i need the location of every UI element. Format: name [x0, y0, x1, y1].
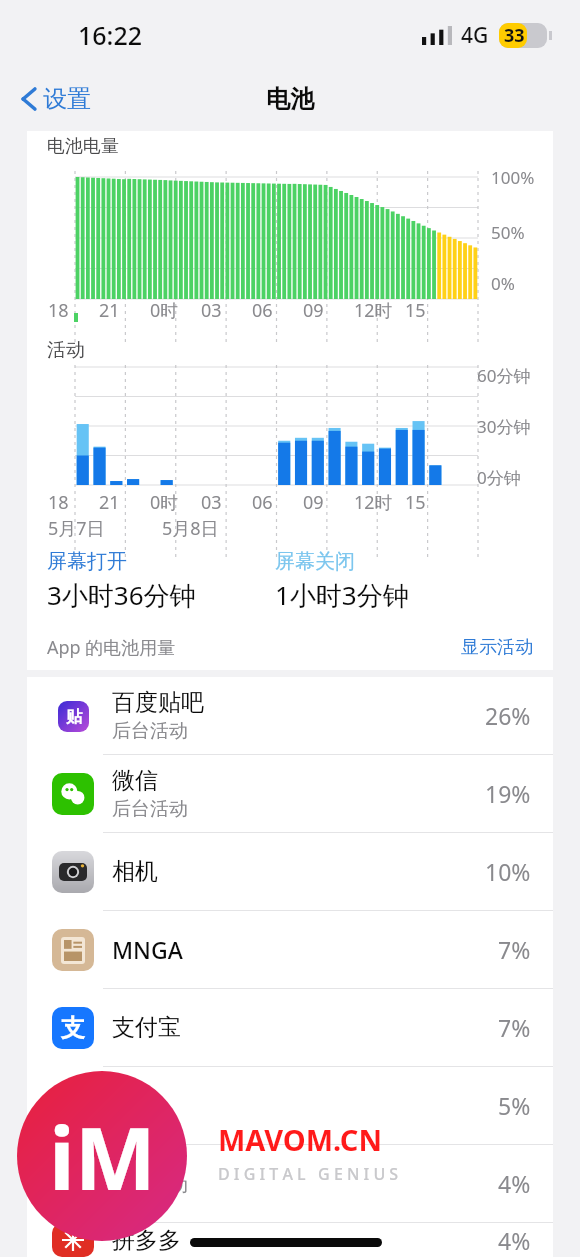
staticText: D I G I T A L G E N I U S	[218, 1163, 399, 1185]
staticText: 活动	[47, 338, 85, 362]
staticText: 0时	[150, 490, 179, 515]
staticText: 18	[48, 298, 69, 323]
staticText: 显示活动	[461, 636, 533, 659]
staticText: 26%	[485, 700, 531, 731]
staticText: 后台活动	[112, 719, 188, 743]
staticText: 设置	[43, 84, 91, 114]
staticText: 贴	[66, 707, 82, 727]
staticText: 7%	[498, 1012, 531, 1043]
staticText: 03	[201, 490, 222, 515]
staticText: 50%	[491, 221, 525, 244]
button[interactable]: MNGA	[27, 911, 553, 988]
staticText: 06	[252, 298, 273, 323]
staticText: 09	[303, 298, 324, 323]
staticText: 相机	[112, 857, 158, 886]
staticText: iM	[49, 1098, 156, 1215]
button[interactable]: 设置	[16, 78, 97, 120]
staticText: 15	[405, 298, 426, 323]
staticText: 7%	[498, 934, 531, 965]
staticText: 09	[303, 490, 324, 515]
staticText: 电池电量	[47, 135, 119, 158]
staticText: 0时	[150, 298, 179, 323]
staticText: 3小时36分钟	[47, 577, 196, 613]
staticText: 100%	[491, 166, 535, 189]
staticText: 30分钟	[477, 415, 531, 438]
staticText: 03	[201, 298, 222, 323]
staticText: 5月8日	[162, 516, 219, 541]
staticText: 06	[252, 490, 273, 515]
staticText: 15	[405, 490, 426, 515]
staticText: App 的电池用量	[47, 635, 176, 660]
staticText: 21	[99, 298, 120, 323]
button[interactable]: 相机	[27, 833, 553, 910]
button[interactable]: 后台活动	[27, 1145, 553, 1222]
staticText: 10%	[485, 856, 531, 887]
staticText: 19%	[485, 778, 531, 809]
staticText: 0分钟	[477, 466, 521, 489]
staticText: 5%	[498, 1090, 531, 1121]
staticText: 屏幕关闭	[275, 549, 355, 574]
staticText: 支付宝	[112, 1013, 181, 1042]
staticText: 后台活动	[112, 797, 188, 821]
button[interactable]: 显示活动	[461, 636, 533, 659]
staticText: 百度贴吧	[112, 688, 204, 717]
staticText: 拼多多	[112, 1226, 181, 1255]
button[interactable]: 微信	[27, 755, 553, 832]
staticText: 12时	[354, 490, 393, 515]
staticText: MAVOM.CN	[218, 1120, 382, 1159]
staticText: 微信	[112, 766, 158, 795]
button[interactable]: 拼多多	[27, 1223, 553, 1257]
staticText: 后台活动	[112, 1173, 188, 1197]
staticText: 4G	[461, 21, 489, 50]
staticText: 21	[99, 490, 120, 515]
staticText: 12时	[354, 298, 393, 323]
staticText: 屏幕打开	[47, 549, 127, 574]
staticText: 33	[504, 23, 525, 48]
staticText: 支	[61, 1013, 85, 1043]
button[interactable]: 贴	[27, 677, 553, 754]
staticText: 1小时3分钟	[275, 577, 409, 613]
staticText: 60分钟	[477, 364, 531, 387]
staticText: 4%	[498, 1168, 531, 1199]
staticText: MNGA	[112, 934, 183, 965]
staticText: 电池	[266, 84, 314, 114]
staticText: 5月7日	[48, 516, 105, 541]
button[interactable]: 支	[27, 989, 553, 1066]
staticText: 18	[48, 490, 69, 515]
staticText: 4%	[498, 1225, 531, 1256]
staticText: 16:22	[78, 18, 143, 52]
button[interactable]: 5%	[27, 1067, 553, 1144]
staticText: 0%	[491, 272, 515, 295]
